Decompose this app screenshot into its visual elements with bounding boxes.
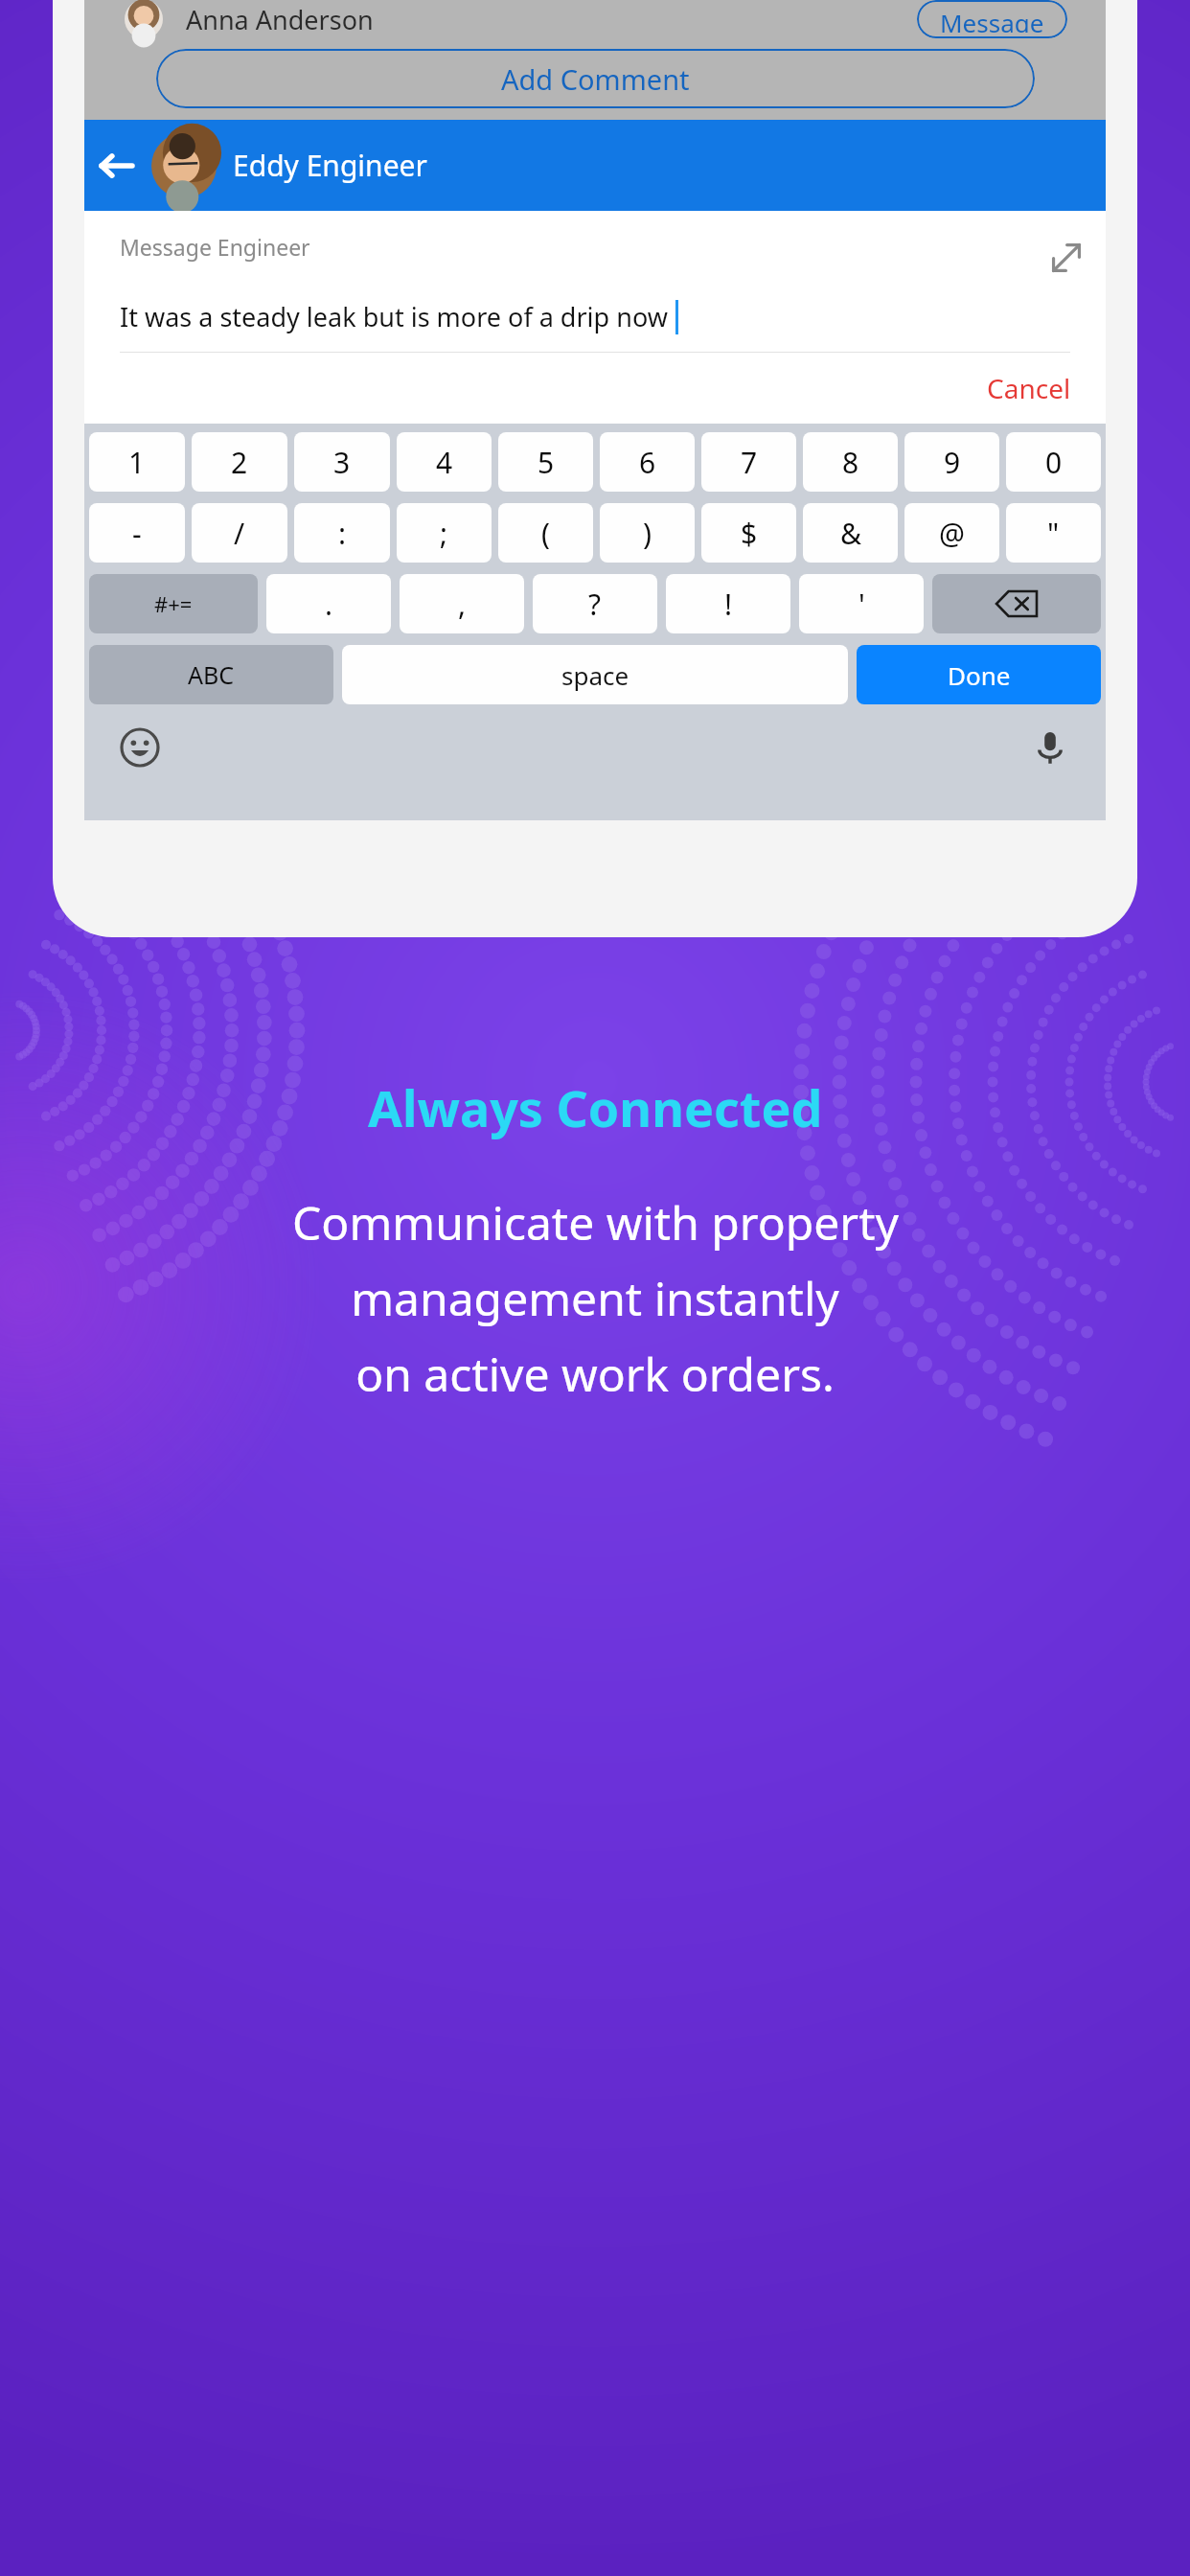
staticText: Done	[948, 658, 1011, 692]
staticText: 4	[436, 443, 453, 482]
button[interactable]: )	[600, 503, 695, 563]
button[interactable]: 7	[701, 432, 796, 492]
staticText: )	[643, 514, 652, 553]
staticText: Eddy Engineer	[233, 146, 427, 185]
staticText: Communicate with property	[292, 1191, 899, 1253]
button[interactable]: Expand	[1041, 232, 1092, 284]
button[interactable]: -	[89, 503, 185, 563]
staticText: #+=	[154, 589, 193, 618]
staticText: /	[234, 514, 245, 553]
button[interactable]: .	[266, 574, 391, 633]
staticText: Cancel	[987, 370, 1071, 406]
staticText: ;	[440, 514, 448, 553]
button[interactable]: Dictate	[1027, 724, 1073, 770]
button[interactable]: '	[799, 574, 924, 633]
staticText: (	[541, 514, 550, 553]
button[interactable]: 1	[89, 432, 185, 492]
staticText: 2	[231, 443, 248, 482]
staticText: 1	[128, 443, 146, 482]
button[interactable]: :	[294, 503, 390, 563]
button[interactable]: 5	[498, 432, 593, 492]
staticText: space	[561, 658, 629, 692]
button[interactable]: $	[701, 503, 796, 563]
button[interactable]: 9	[904, 432, 999, 492]
staticText: 7	[741, 443, 758, 482]
staticText: 5	[538, 443, 555, 482]
staticText: .	[325, 585, 333, 624]
button[interactable]: space	[342, 645, 848, 704]
staticText: :	[338, 514, 347, 553]
staticText: &	[840, 514, 861, 553]
button[interactable]: &	[803, 503, 898, 563]
button[interactable]: 3	[294, 432, 390, 492]
button[interactable]: (	[498, 503, 593, 563]
button[interactable]: 4	[397, 432, 492, 492]
staticText: !	[724, 585, 733, 624]
staticText: It was a steady leak but is more of a dr…	[120, 299, 668, 334]
staticText: 3	[333, 443, 351, 482]
button[interactable]: "	[1006, 503, 1101, 563]
staticText: Always Connected	[368, 1073, 823, 1141]
staticText: @	[939, 514, 965, 553]
staticText: '	[858, 585, 865, 624]
button[interactable]: Backspace	[932, 574, 1101, 633]
staticText: Message Engineer	[120, 232, 310, 262]
staticText: ,	[458, 585, 467, 624]
button[interactable]: #+=	[89, 574, 258, 633]
staticText: 6	[639, 443, 656, 482]
button[interactable]: ABC	[89, 645, 333, 704]
staticText: -	[132, 514, 142, 553]
staticText: $	[741, 514, 758, 553]
staticText: 9	[944, 443, 961, 482]
button[interactable]: 8	[803, 432, 898, 492]
button[interactable]: 2	[192, 432, 287, 492]
button[interactable]: 6	[600, 432, 695, 492]
button[interactable]: Cancel	[952, 360, 1106, 416]
staticText: Anna Anderson	[186, 2, 374, 37]
button[interactable]: /	[192, 503, 287, 563]
button[interactable]: 0	[1006, 432, 1101, 492]
button[interactable]: Back	[84, 134, 148, 197]
button[interactable]: !	[666, 574, 790, 633]
staticText: management instantly	[351, 1267, 839, 1329]
button[interactable]: ;	[397, 503, 492, 563]
staticText: "	[1047, 514, 1060, 553]
button[interactable]: Done	[857, 645, 1101, 704]
button[interactable]: ?	[533, 574, 657, 633]
staticText: on active work orders.	[355, 1343, 835, 1405]
staticText: Add Comment	[501, 60, 690, 98]
button[interactable]: Add Comment	[156, 49, 1035, 108]
staticText: 0	[1045, 443, 1063, 482]
staticText: Message	[940, 6, 1044, 33]
button[interactable]: ,	[400, 574, 524, 633]
staticText: ?	[588, 585, 602, 624]
staticText: ABC	[188, 658, 235, 691]
button[interactable]: Message	[917, 0, 1067, 38]
button[interactable]: @	[904, 503, 999, 563]
button[interactable]: Emoji	[117, 724, 163, 770]
staticText: 8	[842, 443, 859, 482]
